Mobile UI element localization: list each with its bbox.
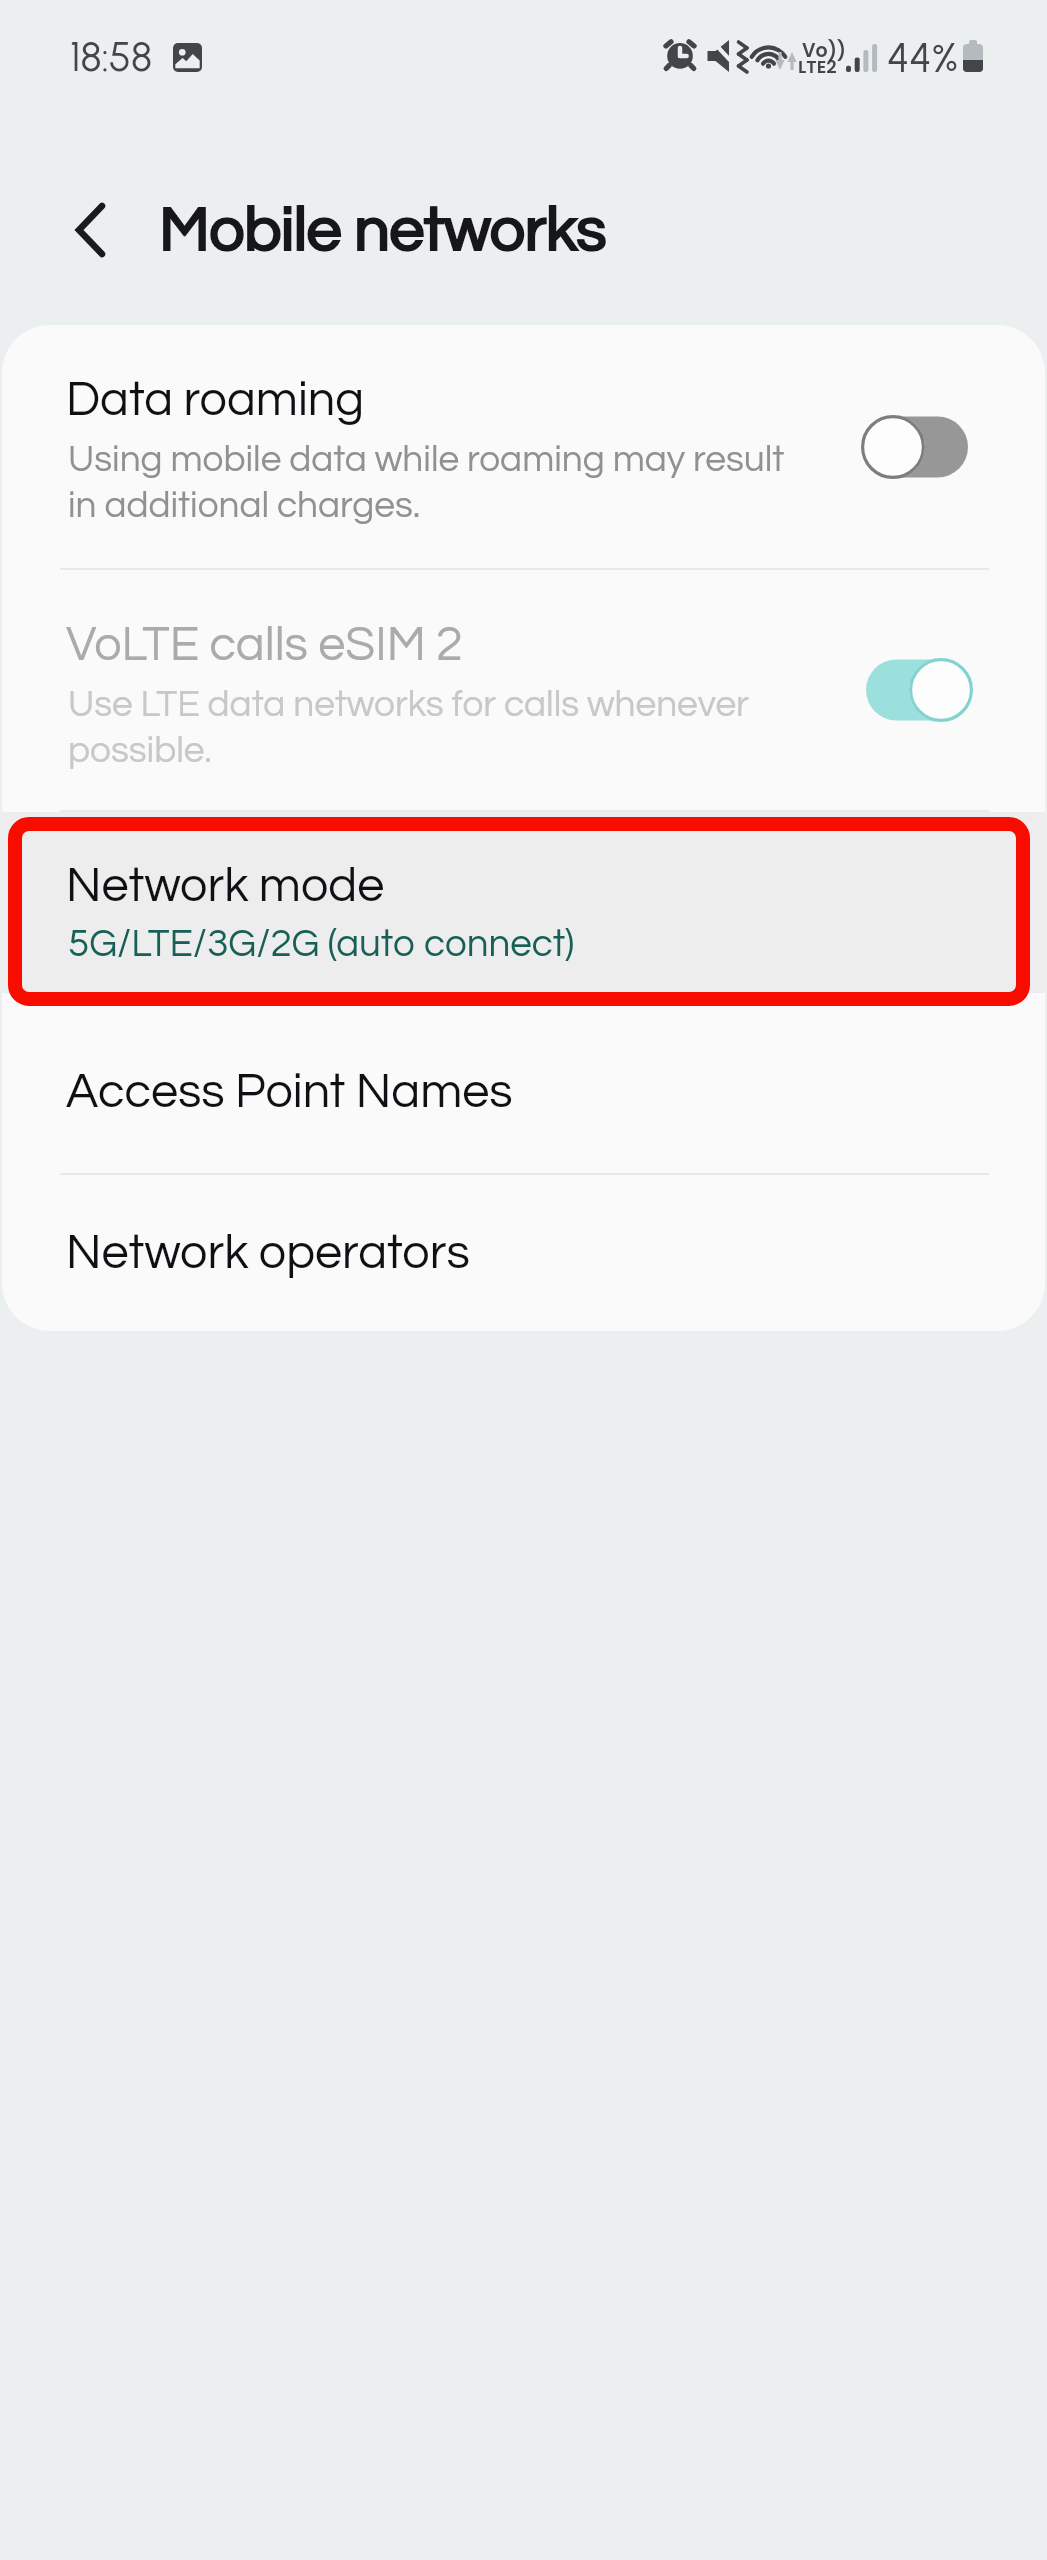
staticText: Access Point Names <box>66 1067 513 1117</box>
staticText: VoLTE calls eSIM 2 <box>66 620 463 670</box>
button[interactable]: Network operators <box>2 1180 1045 1290</box>
staticText: Vo)) <box>802 37 847 64</box>
staticText: Using mobile data while roaming may resu… <box>68 441 785 525</box>
staticText: 44% <box>887 33 959 82</box>
button[interactable]: Network mode <box>2 812 1045 993</box>
button[interactable]: VoLTE calls eSIM 2 <box>2 570 1045 810</box>
staticText: Mobile networks <box>159 199 606 263</box>
staticText: Data roaming <box>66 375 365 425</box>
button[interactable]: Switch on <box>866 655 978 725</box>
button[interactable]: Back <box>47 187 133 273</box>
staticText: 5G/LTE/3G/2G (auto connect) <box>68 924 575 964</box>
staticText: Network mode <box>66 861 385 911</box>
button[interactable]: Data roaming <box>2 325 1045 568</box>
staticText: Mobile networks <box>160 199 607 263</box>
staticText: Network operators <box>66 1228 470 1278</box>
button[interactable]: Switch off <box>866 412 978 482</box>
staticText: LTE2 <box>798 54 837 79</box>
button[interactable]: Access Point Names <box>2 1019 1045 1129</box>
staticText: 18:58 <box>70 33 153 81</box>
staticText: Use LTE data networks for calls whenever… <box>68 686 749 770</box>
